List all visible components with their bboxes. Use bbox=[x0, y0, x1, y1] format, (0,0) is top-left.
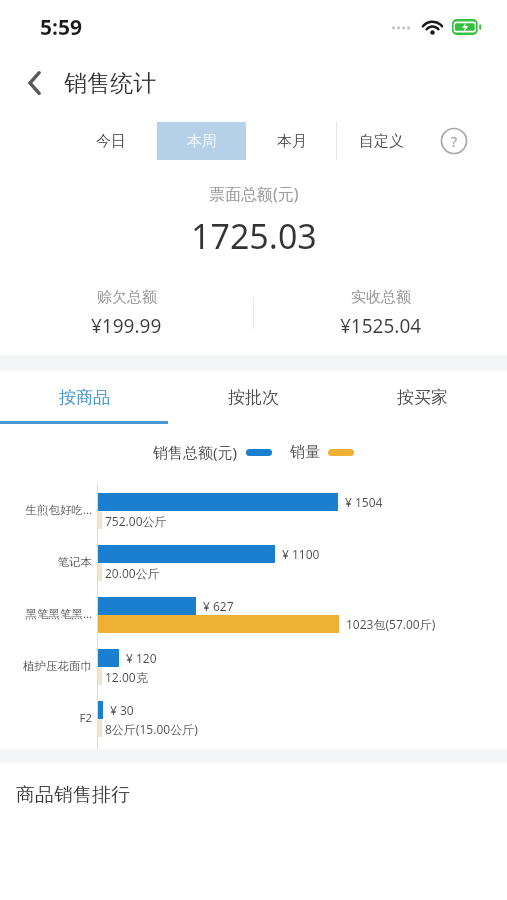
staticText: ¥ 30 bbox=[110, 702, 134, 718]
staticText: 本周 bbox=[187, 132, 217, 151]
staticText: ¥1525.04 bbox=[340, 313, 422, 339]
button[interactable]: 按批次 bbox=[169, 371, 338, 424]
staticText: 本月 bbox=[277, 132, 307, 151]
staticText: 按商品 bbox=[59, 387, 110, 408]
staticText: 生煎包好吃… bbox=[25, 502, 92, 518]
staticText: ¥ 627 bbox=[203, 598, 234, 614]
staticText: 销量 bbox=[290, 443, 320, 462]
staticText: 今日 bbox=[96, 132, 126, 151]
staticText: ¥ 120 bbox=[126, 650, 157, 666]
staticText: 1023包(57.00斤) bbox=[346, 616, 436, 632]
button[interactable]: Help bbox=[439, 126, 469, 156]
button[interactable]: 本周 bbox=[157, 122, 246, 160]
staticText: 实收总额 bbox=[351, 288, 411, 307]
staticText: 12.00克 bbox=[105, 669, 148, 685]
staticText: 1725.03 bbox=[191, 213, 317, 259]
staticText: 销售统计 bbox=[64, 69, 156, 98]
staticText: ¥199.99 bbox=[91, 313, 162, 339]
staticText: ¥ 1100 bbox=[282, 546, 320, 562]
button[interactable]: 自定义 bbox=[337, 122, 426, 160]
staticText: ? bbox=[451, 132, 458, 151]
staticText: 20.00公斤 bbox=[105, 565, 160, 581]
staticText: ¥ 1504 bbox=[345, 494, 383, 510]
button[interactable]: 今日 bbox=[66, 122, 156, 160]
staticText: 按买家 bbox=[397, 387, 448, 408]
staticText: 商品销售排行 bbox=[16, 783, 130, 807]
staticText: 自定义 bbox=[359, 132, 404, 151]
staticText: 植护压花面巾 bbox=[23, 659, 92, 673]
staticText: 笔记本 bbox=[57, 555, 92, 569]
button[interactable]: 按买家 bbox=[338, 371, 507, 424]
button[interactable]: 本月 bbox=[247, 122, 336, 160]
staticText: 752.00公斤 bbox=[105, 513, 167, 529]
staticText: 按批次 bbox=[228, 387, 279, 408]
staticText: 黑笔黑笔黑… bbox=[25, 606, 92, 622]
staticText: 赊欠总额 bbox=[97, 288, 157, 307]
button[interactable]: Back bbox=[14, 62, 56, 104]
staticText: 销售总额(元) bbox=[153, 442, 238, 462]
button[interactable]: 按商品 bbox=[0, 371, 169, 424]
staticText: 8公斤(15.00公斤) bbox=[105, 721, 198, 737]
staticText: 5:59 bbox=[40, 13, 82, 42]
staticText: F2 bbox=[79, 710, 92, 726]
staticText: 票面总额(元) bbox=[209, 183, 299, 205]
